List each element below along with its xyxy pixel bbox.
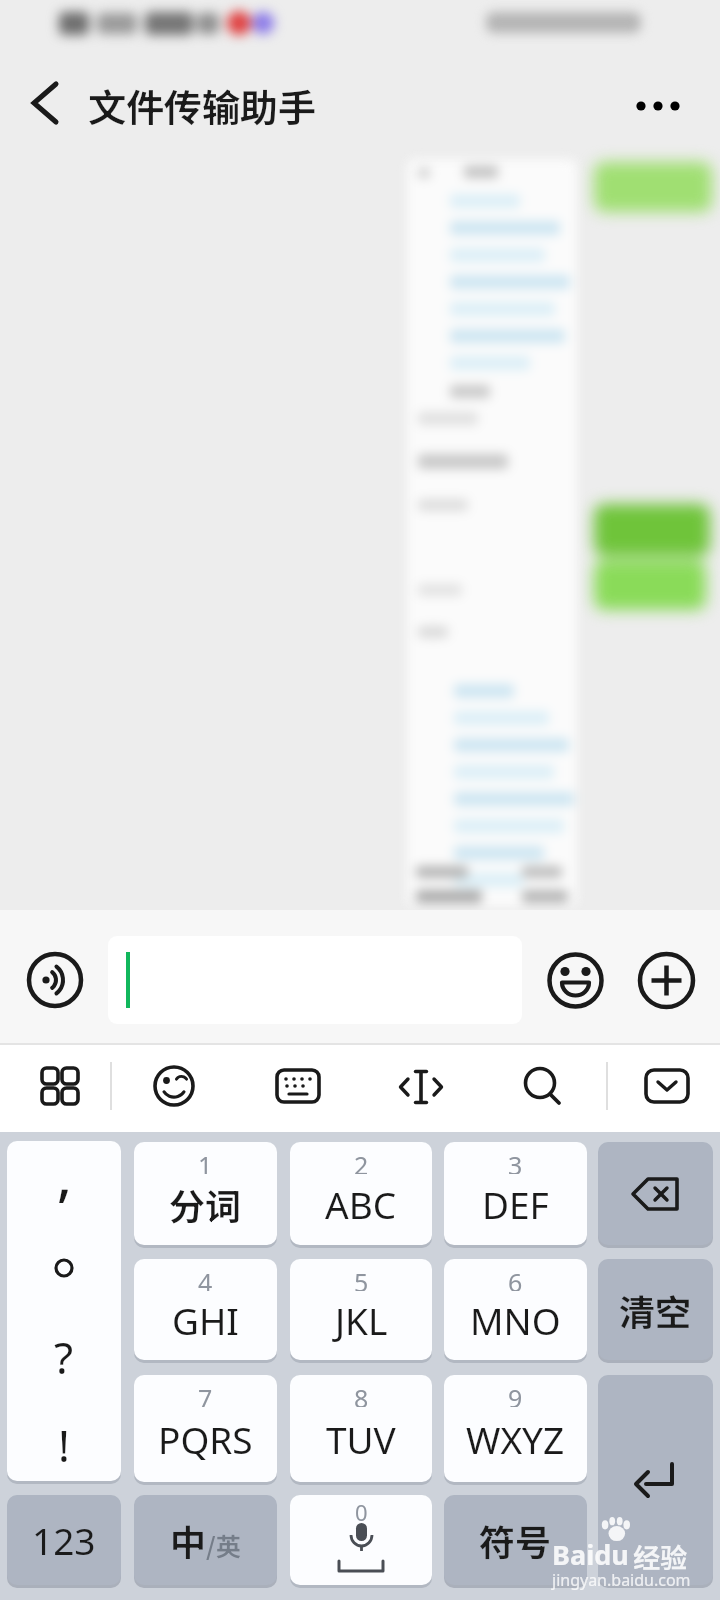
button[interactable] xyxy=(108,936,522,1024)
button[interactable] xyxy=(547,952,604,1009)
staticText: 3 xyxy=(508,1148,523,1174)
button[interactable] xyxy=(625,84,695,128)
staticText: ! xyxy=(58,1415,70,1475)
button[interactable]: 1 xyxy=(134,1142,277,1245)
button[interactable] xyxy=(521,1064,565,1108)
staticText: 2 xyxy=(354,1148,369,1174)
staticText: 分词 xyxy=(169,1178,242,1230)
button[interactable] xyxy=(598,1375,713,1585)
button[interactable]: 0 xyxy=(290,1495,432,1585)
staticText: JKL xyxy=(335,1295,388,1345)
staticText: DEF xyxy=(482,1179,549,1229)
button[interactable] xyxy=(638,952,695,1009)
staticText: GHI xyxy=(172,1295,239,1345)
staticText: ABC xyxy=(325,1179,397,1229)
button[interactable]: 4 xyxy=(134,1259,277,1360)
staticText: MNO xyxy=(470,1295,561,1345)
staticText: 中/英 xyxy=(170,1514,241,1566)
staticText: 4 xyxy=(198,1265,213,1291)
button[interactable] xyxy=(398,1066,444,1108)
button[interactable]: , xyxy=(7,1141,121,1481)
button[interactable] xyxy=(274,1066,322,1106)
staticText: 5 xyxy=(354,1265,369,1291)
staticText: 清空 xyxy=(619,1284,692,1336)
button[interactable] xyxy=(37,1063,83,1109)
button[interactable]: 清空 xyxy=(598,1259,713,1360)
button[interactable]: 中/英 xyxy=(134,1495,277,1585)
staticText: 文件传输助手 xyxy=(88,78,317,128)
staticText: 符号 xyxy=(479,1514,552,1566)
button[interactable]: 7 xyxy=(134,1375,277,1482)
button[interactable] xyxy=(20,80,70,126)
button[interactable] xyxy=(152,1064,196,1108)
staticText: 7 xyxy=(198,1381,213,1407)
staticText: 8 xyxy=(354,1381,369,1407)
staticText: 经验 xyxy=(633,1537,687,1576)
staticText: ? xyxy=(54,1327,74,1387)
button[interactable]: 8 xyxy=(290,1375,432,1482)
button[interactable]: 3 xyxy=(444,1142,587,1245)
staticText: TUV xyxy=(326,1414,396,1464)
staticText: jingyan.baidu.com xyxy=(552,1569,691,1591)
staticText: 0 xyxy=(355,1497,368,1521)
button[interactable]: 5 xyxy=(290,1259,432,1360)
staticText: , xyxy=(57,1141,72,1212)
staticText: 6 xyxy=(508,1265,523,1291)
button[interactable]: 符号 xyxy=(444,1495,587,1585)
staticText: 123 xyxy=(32,1515,96,1565)
button[interactable]: 6 xyxy=(444,1259,587,1360)
staticText: 1 xyxy=(198,1148,213,1174)
staticText: WXYZ xyxy=(466,1414,565,1464)
button[interactable] xyxy=(26,951,84,1009)
staticText: 9 xyxy=(508,1381,523,1407)
staticText: Baidu xyxy=(552,1536,629,1573)
button[interactable] xyxy=(644,1068,690,1105)
button[interactable]: 2 xyxy=(290,1142,432,1245)
staticText: PQRS xyxy=(158,1414,253,1464)
button[interactable] xyxy=(598,1142,713,1245)
button[interactable]: 123 xyxy=(7,1495,121,1585)
button[interactable]: 9 xyxy=(444,1375,587,1482)
